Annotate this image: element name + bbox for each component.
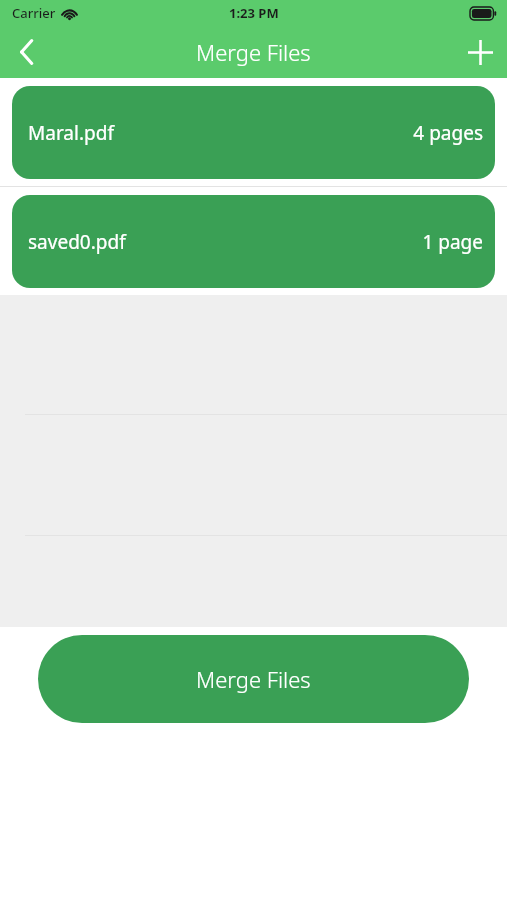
button[interactable]: Add file	[453, 26, 507, 78]
button[interactable]: saved0.pdf	[12, 195, 495, 288]
staticText: 1 page	[422, 229, 483, 255]
button[interactable]: Back	[0, 26, 54, 78]
staticText: 1:23 PM	[229, 4, 279, 22]
button[interactable]: Maral.pdf	[12, 86, 495, 179]
staticText: Merge Files	[196, 37, 311, 67]
staticText: saved0.pdf	[28, 229, 126, 255]
staticText: 4 pages	[413, 120, 483, 146]
button[interactable]: Merge Files	[38, 635, 469, 723]
staticText: Maral.pdf	[28, 120, 114, 146]
staticText: Merge Files	[196, 664, 311, 694]
staticText: Carrier	[12, 4, 56, 22]
